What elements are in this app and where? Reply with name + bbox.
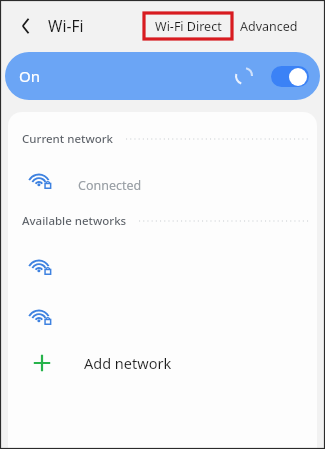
staticText: Wi-Fi Direct	[155, 18, 222, 35]
button[interactable]: Add network	[8, 340, 317, 386]
button[interactable]: On	[5, 52, 320, 100]
button[interactable]: Back	[14, 14, 38, 38]
staticText: Current network	[22, 131, 114, 147]
button[interactable]: Wi-Fi network	[8, 290, 317, 340]
staticText: On	[19, 66, 40, 86]
button[interactable]: Wi-Fi toggle, on	[271, 66, 309, 87]
staticText: Add network	[84, 353, 172, 373]
staticText: Available networks	[22, 213, 127, 229]
button[interactable]: Advanced	[240, 18, 298, 35]
button[interactable]: Wi-Fi	[48, 15, 84, 36]
button[interactable]: Wi-Fi network	[8, 240, 317, 290]
button[interactable]: Wi-Fi Direct	[143, 12, 233, 40]
staticText: Connected	[78, 177, 142, 194]
button[interactable]: Connected	[8, 154, 317, 204]
